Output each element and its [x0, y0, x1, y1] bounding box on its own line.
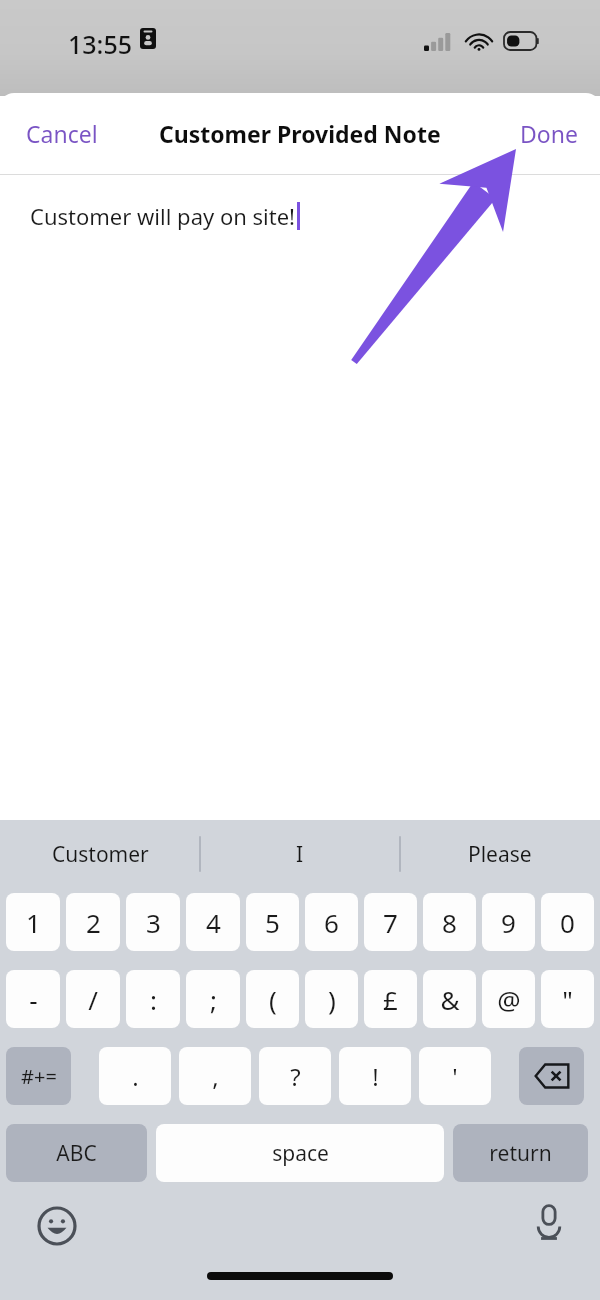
staticText: 3 [146, 905, 161, 940]
staticText: @ [497, 982, 521, 1017]
button[interactable]: 8 [423, 893, 476, 951]
staticText: ! [372, 1060, 379, 1093]
button[interactable]: ) [305, 970, 358, 1028]
staticText: ? [290, 1060, 301, 1093]
staticText: - [29, 982, 38, 1017]
staticText: 2 [86, 905, 101, 940]
staticText: & [440, 982, 460, 1017]
staticText: 9 [501, 905, 516, 940]
staticText: 4 [206, 905, 221, 940]
button[interactable]: 3 [126, 893, 180, 951]
staticText: 7 [383, 905, 398, 940]
staticText: " [562, 982, 573, 1017]
staticText: 5 [265, 905, 280, 940]
button[interactable]: return [453, 1124, 588, 1182]
staticText: ; [210, 982, 217, 1017]
button[interactable]: ABC [6, 1124, 147, 1182]
staticText: Please [468, 840, 532, 869]
staticText: space [272, 1139, 329, 1168]
staticText: 0 [560, 905, 575, 940]
button[interactable]: ( [246, 970, 299, 1028]
staticText: . [132, 1060, 139, 1093]
button[interactable]: 1 [6, 893, 60, 951]
staticText: 6 [324, 905, 339, 940]
button[interactable]: ? [259, 1047, 331, 1105]
staticText: #+= [21, 1063, 57, 1090]
button[interactable]: Cancel [0, 104, 124, 163]
button[interactable]: ' [419, 1047, 491, 1105]
staticText: Customer will pay on site! [30, 201, 296, 231]
button[interactable]: Customer [0, 820, 200, 888]
staticText: ( [269, 982, 277, 1017]
button[interactable]: : [126, 970, 180, 1028]
staticText: ' [452, 1060, 458, 1093]
button[interactable]: 6 [305, 893, 358, 951]
staticText: Cancel [26, 118, 98, 149]
staticText: ABC [56, 1139, 97, 1168]
button[interactable]: space [156, 1124, 444, 1182]
button[interactable]: Emoji keyboard [30, 1199, 84, 1253]
button[interactable]: 0 [541, 893, 594, 951]
button[interactable]: , [179, 1047, 251, 1105]
button[interactable]: ; [186, 970, 240, 1028]
staticText: Done [520, 118, 578, 149]
button[interactable]: " [541, 970, 594, 1028]
button[interactable]: Backspace [519, 1047, 584, 1105]
staticText: return [489, 1139, 552, 1168]
button[interactable]: #+= [6, 1047, 71, 1105]
button[interactable]: £ [364, 970, 417, 1028]
button[interactable]: 5 [246, 893, 299, 951]
button[interactable]: / [66, 970, 120, 1028]
staticText: I [296, 840, 304, 869]
staticText: : [150, 982, 157, 1017]
button[interactable]: 9 [482, 893, 535, 951]
button[interactable]: I [200, 820, 400, 888]
staticText: £ [383, 982, 398, 1017]
staticText: Customer Provided Note [159, 118, 441, 149]
button[interactable]: Please [400, 820, 600, 888]
button[interactable]: ! [339, 1047, 411, 1105]
staticText: Customer [52, 840, 149, 869]
staticText: / [88, 982, 98, 1017]
button[interactable]: Done [498, 104, 600, 163]
button[interactable]: . [99, 1047, 171, 1105]
staticText: , [212, 1060, 219, 1093]
button[interactable]: 2 [66, 893, 120, 951]
button[interactable]: & [423, 970, 476, 1028]
staticText: 13:55 [68, 27, 133, 61]
staticText: 1 [26, 905, 41, 940]
button[interactable]: 7 [364, 893, 417, 951]
button[interactable]: @ [482, 970, 535, 1028]
button[interactable]: - [6, 970, 60, 1028]
button[interactable]: 4 [186, 893, 240, 951]
staticText: ) [328, 982, 336, 1017]
button[interactable]: Dictation [522, 1196, 576, 1250]
staticText: 8 [442, 905, 457, 940]
